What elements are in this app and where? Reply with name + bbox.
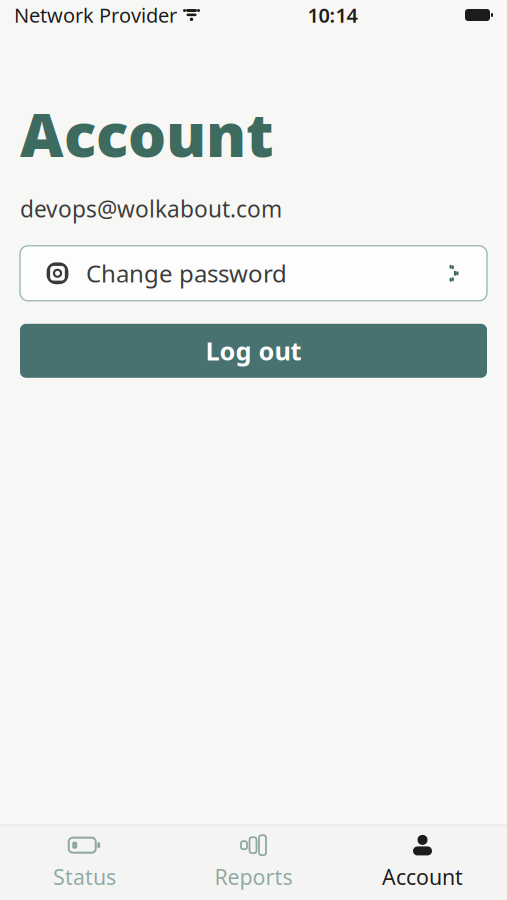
button[interactable]: Status	[0, 826, 169, 900]
staticText: devops@wolkabout.com	[20, 194, 282, 224]
staticText: Log out	[205, 334, 301, 368]
button[interactable]: Change password	[0, 246, 507, 301]
staticText: Status	[53, 863, 116, 891]
staticText: Change password	[86, 257, 287, 289]
staticText: Network Provider	[14, 2, 177, 28]
button[interactable]: Reports	[169, 826, 338, 900]
staticText: 10:14	[307, 2, 357, 28]
button[interactable]: Log out	[0, 324, 507, 378]
staticText: Account	[382, 863, 463, 891]
staticText: Account	[20, 94, 274, 174]
staticText: Reports	[214, 863, 292, 891]
button[interactable]: Account	[338, 826, 507, 900]
